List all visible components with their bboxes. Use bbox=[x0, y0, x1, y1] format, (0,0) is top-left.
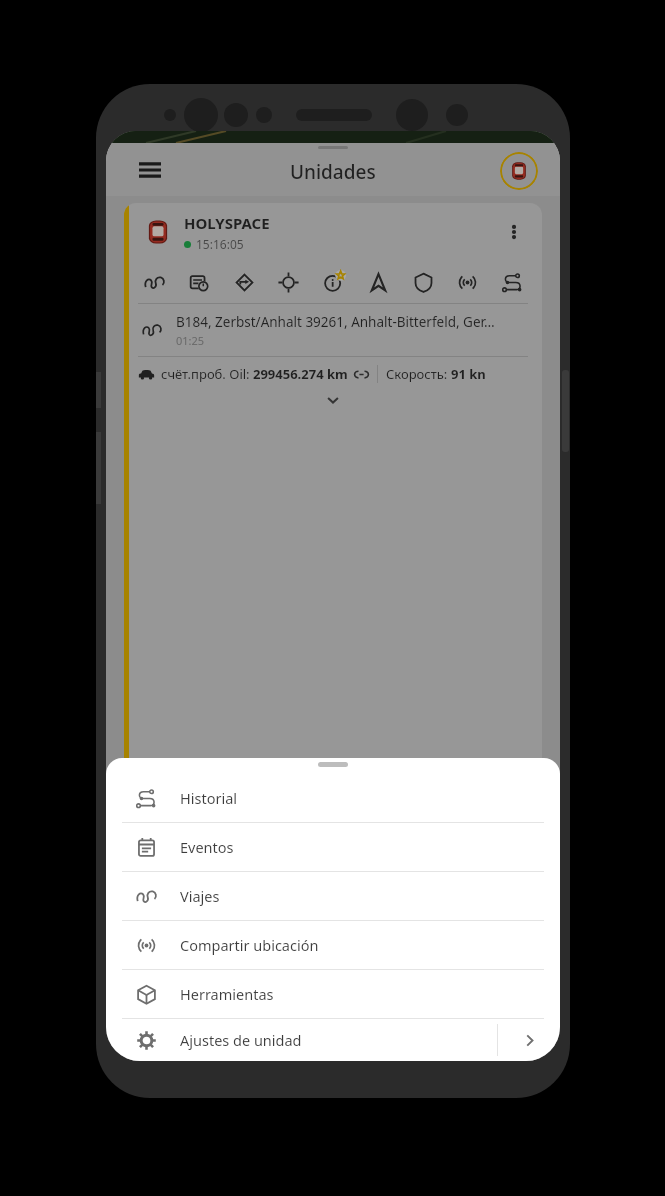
button[interactable]: Nav bbox=[362, 266, 394, 298]
button[interactable]: Report bbox=[183, 266, 215, 298]
button[interactable]: Current unit bbox=[500, 152, 538, 190]
staticText: Скорость: bbox=[386, 365, 451, 383]
button[interactable]: Route bbox=[496, 266, 528, 298]
button[interactable]: Eventos bbox=[106, 823, 560, 871]
staticText: Herramientas bbox=[180, 984, 274, 1004]
button[interactable]: Target bbox=[272, 266, 304, 298]
button[interactable]: HOLYSPACE bbox=[124, 203, 542, 1061]
staticText: счёт.проб. Oil: bbox=[161, 365, 253, 383]
staticText: HOLYSPACE bbox=[184, 213, 270, 233]
staticText: Unidades bbox=[290, 159, 376, 185]
button[interactable]: Ajustes de unidad bbox=[106, 1019, 560, 1061]
staticText: Historial bbox=[180, 788, 238, 808]
button[interactable]: More options bbox=[496, 214, 532, 250]
button[interactable]: Trip bbox=[138, 266, 170, 298]
button[interactable]: Broadcast bbox=[451, 266, 483, 298]
staticText: Eventos bbox=[180, 837, 234, 857]
button[interactable]: Menu bbox=[128, 148, 172, 192]
staticText: 15:16:05 bbox=[196, 236, 244, 252]
button[interactable]: Historial bbox=[106, 774, 560, 822]
staticText: Compartir ubicación bbox=[180, 935, 319, 955]
button[interactable]: Compartir ubicación bbox=[106, 921, 560, 969]
staticText: 91 kn bbox=[451, 365, 486, 383]
staticText: Viajes bbox=[180, 886, 220, 906]
button[interactable]: Herramientas bbox=[106, 970, 560, 1018]
button[interactable]: InfoStar bbox=[317, 266, 349, 298]
staticText: 299456.274 km bbox=[253, 365, 348, 383]
staticText: 01:25 bbox=[176, 333, 205, 348]
button[interactable]: Geofence bbox=[228, 266, 260, 298]
staticText: Ajustes de unidad bbox=[180, 1030, 302, 1050]
staticText: B184, Zerbst/Anhalt 39261, Anhalt-Bitter… bbox=[176, 313, 495, 331]
button[interactable]: Shield bbox=[407, 266, 439, 298]
button[interactable]: Viajes bbox=[106, 872, 560, 920]
